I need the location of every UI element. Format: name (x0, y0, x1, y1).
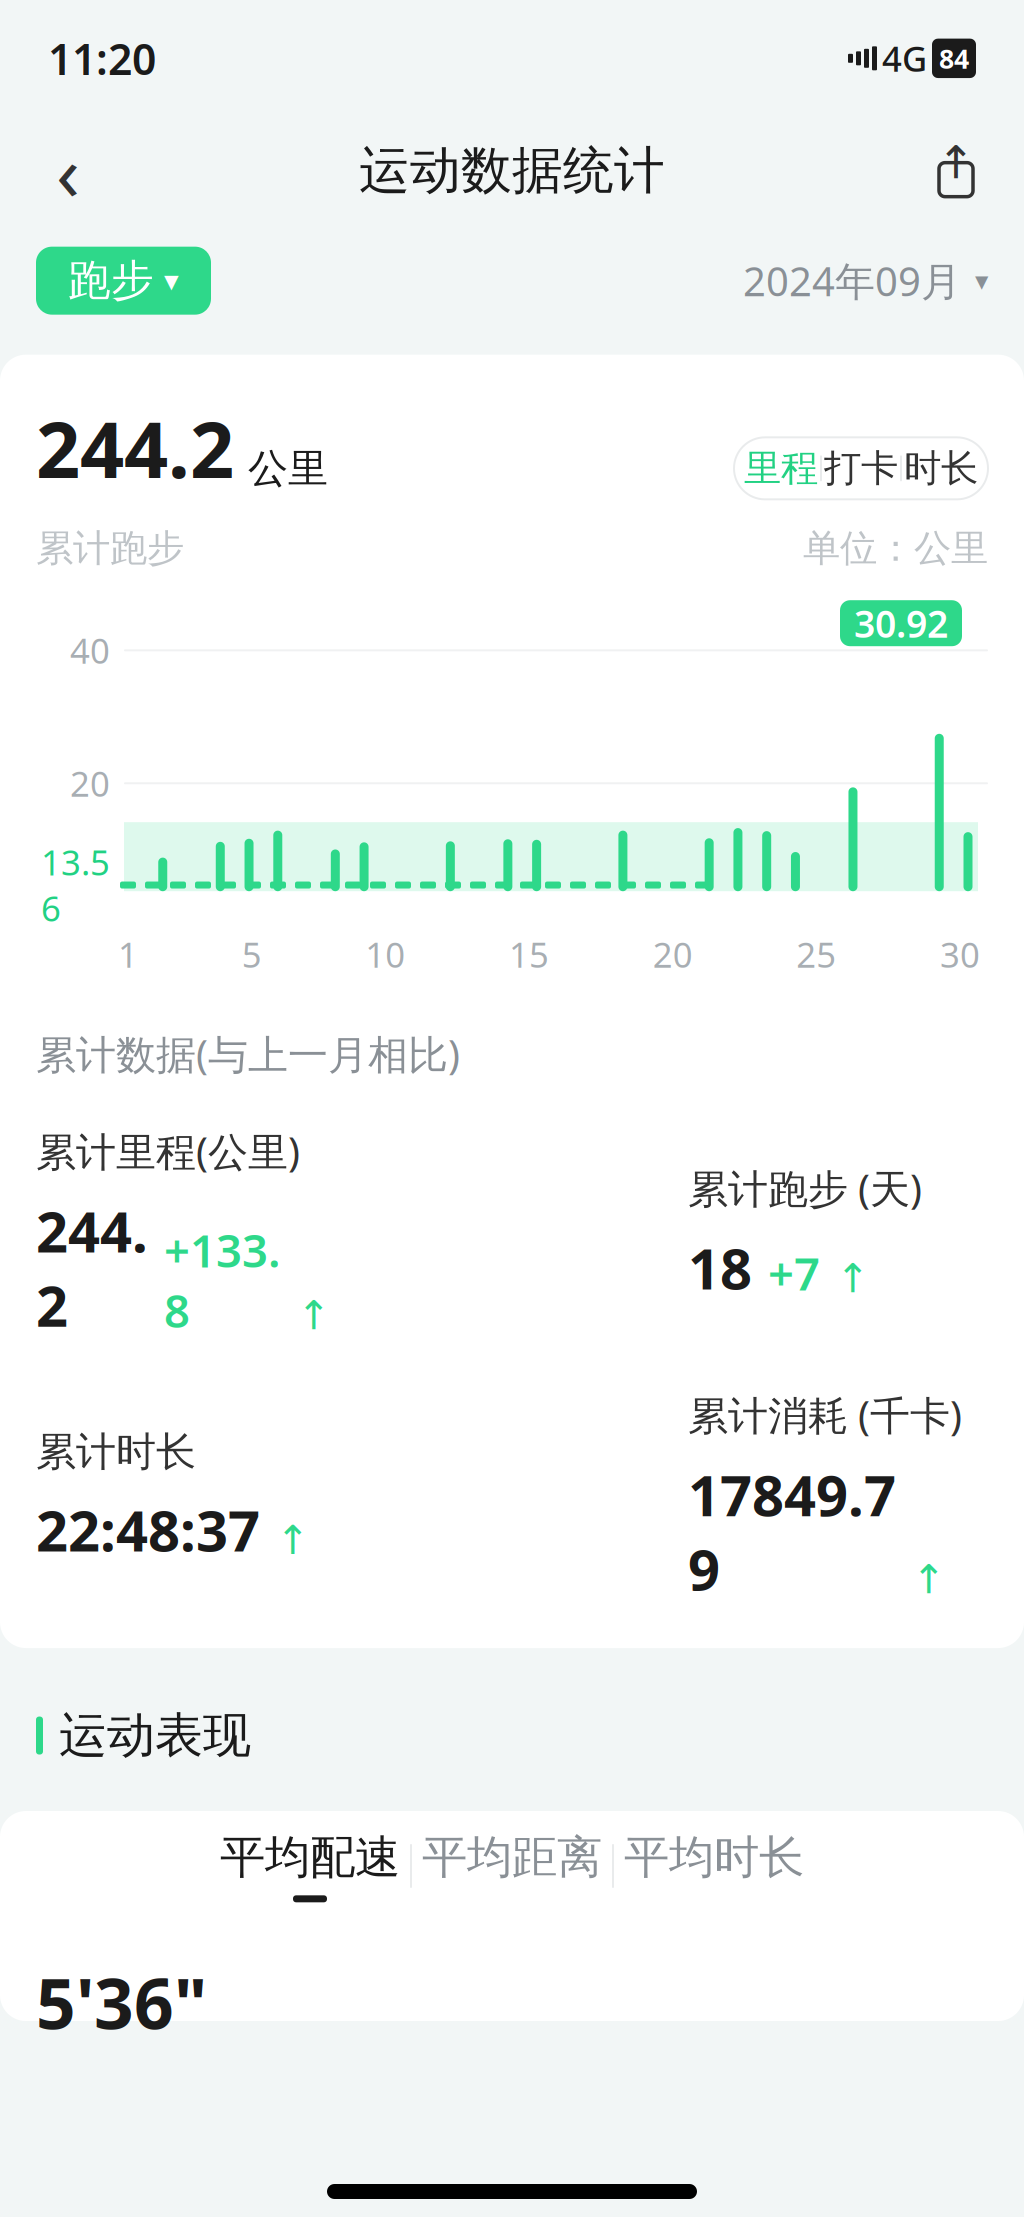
staticText: ▾ (975, 265, 988, 296)
staticText: 累计跑步 (天) (688, 1161, 922, 1215)
staticText: 平均配速 (220, 1830, 400, 1885)
staticText: 累计跑步 (36, 525, 184, 571)
staticText: 时长 (904, 445, 978, 491)
staticText: 累计消耗 (千卡) (688, 1388, 962, 1441)
button[interactable]: 平均时长 (614, 1830, 814, 1902)
staticText: ‹ (56, 119, 80, 222)
staticText: 5 (242, 931, 262, 977)
staticText: 244.2 (36, 1193, 148, 1342)
staticText: ↑ (937, 137, 975, 188)
button[interactable]: 平均距离 (412, 1830, 612, 1902)
staticText: 平均距离 (422, 1830, 602, 1885)
staticText: 13.56 (41, 839, 110, 931)
staticText: 30 (940, 931, 980, 977)
button[interactable]: 打卡 (822, 441, 900, 495)
staticText: 22:48:37 (36, 1492, 260, 1567)
staticText: ↑ (912, 1557, 946, 1602)
staticText: 打卡 (824, 445, 898, 491)
button[interactable]: 返回 (28, 131, 108, 211)
staticText: 2024年09月 (743, 254, 961, 307)
staticText: 20 (70, 760, 110, 806)
staticText: +7 (768, 1243, 820, 1303)
staticText: +133.8 (164, 1220, 281, 1340)
staticText: 单位：公里 (803, 525, 988, 571)
staticText: 10 (365, 931, 405, 977)
staticText: 平均时长 (624, 1830, 804, 1885)
staticText: ↑ (297, 1293, 331, 1338)
button[interactable]: 跑步 (36, 247, 211, 315)
button[interactable]: 分享 (916, 131, 996, 211)
staticText: 运动数据统计 (359, 139, 665, 202)
staticText: 40 (70, 627, 110, 673)
staticText: 18 (688, 1231, 752, 1305)
staticText: 4G (882, 35, 927, 81)
staticText: 5'36" (36, 1956, 207, 2048)
staticText: ↑ (836, 1256, 870, 1301)
staticText: 运动表现 (59, 1706, 251, 1765)
staticText: 17849.79 (688, 1457, 896, 1606)
staticText: 20 (653, 931, 693, 977)
staticText: 里程 (744, 445, 818, 491)
staticText: 84 (939, 41, 969, 76)
button[interactable]: 平均配速 (210, 1830, 410, 1902)
staticText: 15 (509, 931, 549, 977)
button[interactable]: 时长 (902, 441, 980, 495)
staticText: 1 (118, 931, 138, 977)
button[interactable]: 2024年09月 (743, 254, 988, 307)
button[interactable]: 里程 (742, 441, 820, 495)
staticText: 公里 (248, 444, 328, 493)
staticText: 跑步 (68, 254, 154, 307)
staticText: 244.2 (36, 397, 234, 499)
staticText: 累计里程(公里) (36, 1124, 300, 1177)
staticText: 25 (796, 931, 836, 977)
staticText: ↑ (276, 1517, 310, 1563)
staticText: 30.92 (854, 598, 948, 648)
staticText: 累计时长 (36, 1427, 196, 1476)
staticText: 11:20 (48, 30, 156, 87)
staticText: 累计数据(与上一月相比) (36, 1027, 460, 1080)
staticText: ▾ (164, 264, 179, 297)
